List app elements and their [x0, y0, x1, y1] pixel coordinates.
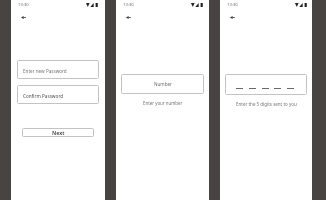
button[interactable]: [225, 74, 307, 95]
staticText: 13:30: [18, 2, 29, 8]
button[interactable]: Next: [22, 128, 94, 137]
staticText: 13:30: [227, 2, 238, 8]
button[interactable]: Number: [121, 74, 204, 94]
button[interactable]: Confirm Password: [17, 85, 99, 104]
staticText: Next: [52, 129, 65, 136]
button[interactable]: Back: [122, 11, 135, 24]
staticText: Confirm Password: [23, 93, 64, 99]
staticText: Number: [154, 81, 172, 87]
button[interactable]: Back: [226, 11, 239, 24]
staticText: Enter your number: [143, 100, 183, 106]
staticText: 13:30: [123, 2, 134, 8]
staticText: Enter new Password: [23, 68, 67, 74]
staticText: Enter the 5 digits sent to you: [236, 101, 297, 107]
button[interactable]: Enter new Password: [17, 60, 99, 79]
button[interactable]: Back: [17, 11, 30, 24]
